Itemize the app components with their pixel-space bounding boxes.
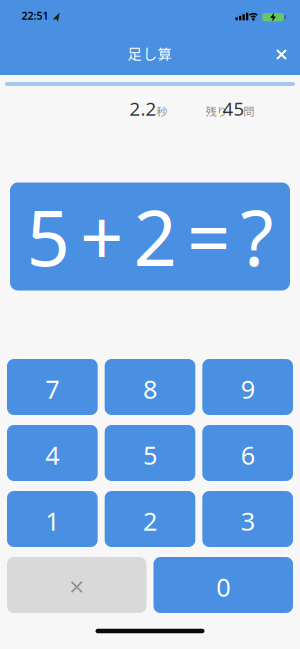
staticText: 問 [243,103,254,119]
button[interactable]: 5 [105,425,195,481]
button[interactable]: 6 [202,425,293,481]
staticText: 22:51 [21,8,48,23]
button[interactable]: 0 [153,557,293,613]
button[interactable]: 4 [7,425,98,481]
staticText: 2 [143,504,157,538]
button[interactable]: 7 [7,359,98,415]
button[interactable]: 3 [202,491,293,547]
button[interactable]: 8 [105,359,195,415]
staticText: 5 [143,438,157,472]
staticText: 2.2 [129,96,156,121]
staticText: 残り [205,103,227,119]
staticText: 足し算 [127,43,172,64]
staticText: 8 [143,372,157,406]
staticText: 6 [241,438,255,472]
button[interactable]: 9 [202,359,293,415]
staticText: 9 [241,372,255,406]
staticText: 4 [45,438,59,472]
staticText: 3 [241,504,255,538]
button[interactable]: 2 [105,491,195,547]
button[interactable] [259,32,300,76]
button[interactable]: 1 [7,491,98,547]
staticText: 45 [222,96,244,121]
staticText: 0 [216,570,230,604]
staticText: 5+2=? [26,186,273,287]
staticText: 1 [45,504,59,538]
button[interactable] [7,557,146,613]
staticText: 7 [45,372,59,406]
staticText: 秒 [156,103,167,119]
